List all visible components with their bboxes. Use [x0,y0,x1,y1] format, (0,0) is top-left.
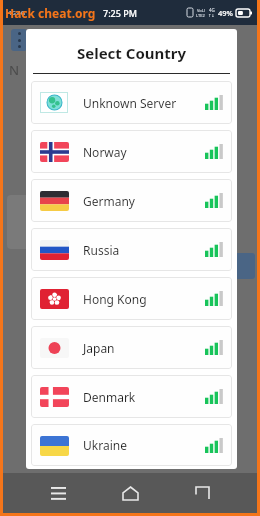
button[interactable]: Denmark [31,375,232,418]
button[interactable]: Norway [31,130,232,173]
button[interactable]: Back [185,476,219,510]
button[interactable]: Hong Kong [31,277,232,320]
staticText: 49% [218,8,233,18]
staticText: Hong Kong [83,291,205,307]
staticText: ↑↓ [208,13,215,18]
staticText: 4G [209,7,215,13]
staticText: Japan [83,340,205,356]
staticText: Unknown Server [83,95,205,111]
button[interactable]: Japan [31,326,232,369]
staticText: Denmark [83,389,205,405]
staticText: Select Country [26,43,237,63]
staticText: VoLl [197,8,205,13]
staticText: Hack cheat.org [5,5,96,21]
staticText: 7:25 PM [103,7,137,19]
staticText: LTE2 [196,13,205,18]
button[interactable]: Unknown Server [31,81,232,124]
staticText: Russia [83,242,205,258]
staticText: 4G 4G [8,9,26,17]
staticText: Ukraine [83,437,205,453]
button[interactable]: Russia [31,228,232,271]
button[interactable]: Germany [31,179,232,222]
button[interactable]: Home [113,476,147,510]
staticText: Norway [83,144,205,160]
staticText: N [9,61,20,79]
button[interactable]: Ukraine [31,424,232,466]
staticText: Germany [83,193,205,209]
button[interactable]: Recent apps [41,476,75,510]
